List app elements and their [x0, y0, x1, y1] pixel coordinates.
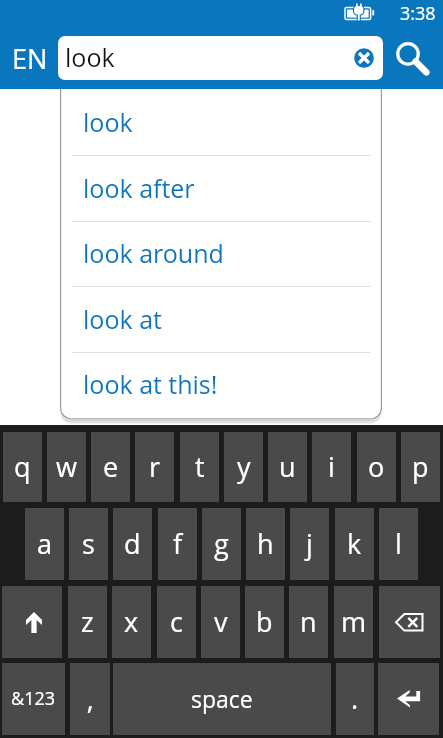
button[interactable]: u: [268, 432, 307, 502]
staticText: d: [124, 525, 141, 562]
staticText: g: [214, 525, 229, 562]
staticText: t: [195, 448, 205, 485]
button[interactable]: c: [157, 586, 196, 658]
staticText: e: [103, 448, 119, 485]
button[interactable]: n: [289, 586, 328, 658]
staticText: look at this!: [83, 367, 218, 401]
button[interactable]: w: [47, 432, 86, 502]
staticText: r: [149, 448, 161, 485]
button[interactable]: a: [25, 508, 64, 580]
staticText: s: [82, 525, 95, 562]
staticText: q: [14, 448, 31, 485]
staticText: p: [412, 448, 429, 485]
button[interactable]: g: [202, 508, 241, 580]
button[interactable]: look: [60, 89, 382, 155]
staticText: k: [347, 525, 362, 562]
button[interactable]: i: [312, 432, 351, 502]
button[interactable]: look: [58, 36, 383, 80]
staticText: h: [257, 525, 274, 562]
button[interactable]: f: [158, 508, 197, 580]
staticText: look: [83, 105, 133, 139]
button[interactable]: &123: [2, 663, 65, 735]
button[interactable]: EN: [2, 34, 58, 82]
button[interactable]: Search: [387, 33, 439, 81]
button[interactable]: l: [379, 508, 418, 580]
button[interactable]: r: [135, 432, 174, 502]
staticText: .: [351, 680, 359, 717]
staticText: o: [368, 448, 385, 485]
button[interactable]: Backspace: [379, 586, 440, 658]
button[interactable]: look at: [60, 286, 382, 352]
staticText: look at: [83, 302, 162, 336]
staticText: y: [237, 448, 251, 485]
staticText: EN: [12, 40, 48, 77]
button[interactable]: Shift: [2, 586, 62, 658]
button[interactable]: q: [3, 432, 42, 502]
staticText: 3:38: [400, 1, 436, 26]
button[interactable]: m: [334, 586, 373, 658]
button[interactable]: j: [290, 508, 329, 580]
staticText: b: [256, 603, 273, 640]
staticText: j: [306, 525, 313, 562]
button[interactable]: x: [112, 586, 151, 658]
button[interactable]: Clear text: [352, 46, 376, 70]
button[interactable]: Enter: [378, 663, 439, 735]
button[interactable]: h: [246, 508, 285, 580]
staticText: z: [81, 603, 94, 640]
staticText: &123: [11, 686, 56, 711]
button[interactable]: s: [69, 508, 108, 580]
staticText: space: [191, 683, 253, 714]
staticText: look after: [83, 171, 195, 205]
button[interactable]: d: [113, 508, 152, 580]
staticText: n: [300, 603, 317, 640]
staticText: look: [65, 40, 115, 74]
staticText: ,: [87, 680, 94, 717]
staticText: c: [170, 603, 183, 640]
staticText: l: [395, 525, 402, 562]
staticText: a: [37, 525, 53, 562]
staticText: f: [173, 525, 183, 562]
staticText: u: [279, 448, 296, 485]
button[interactable]: .: [336, 663, 374, 735]
staticText: i: [328, 448, 335, 485]
button[interactable]: v: [201, 586, 240, 658]
button[interactable]: look around: [60, 220, 382, 286]
button[interactable]: o: [357, 432, 396, 502]
button[interactable]: t: [180, 432, 219, 502]
button[interactable]: p: [401, 432, 440, 502]
button[interactable]: look at this!: [60, 351, 382, 417]
button[interactable]: ,: [70, 663, 110, 735]
staticText: x: [124, 603, 139, 640]
button[interactable]: z: [68, 586, 107, 658]
button[interactable]: y: [224, 432, 263, 502]
staticText: m: [341, 603, 367, 640]
staticText: w: [56, 448, 78, 485]
button[interactable]: k: [335, 508, 374, 580]
button[interactable]: e: [91, 432, 130, 502]
staticText: look around: [83, 236, 224, 270]
button[interactable]: space: [113, 663, 331, 735]
staticText: v: [214, 603, 228, 640]
button[interactable]: b: [245, 586, 284, 658]
button[interactable]: look after: [60, 155, 382, 221]
